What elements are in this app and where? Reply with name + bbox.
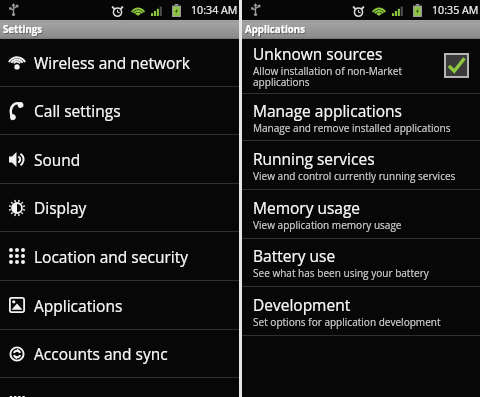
button[interactable]: Battery use [242,239,480,286]
button[interactable]: Unknown sources [242,39,480,93]
button[interactable]: Wireless and network [0,39,239,86]
staticText: Accounts and sync [34,343,168,364]
button[interactable]: Manage applications [242,94,480,140]
staticText: Location and security [34,246,188,267]
staticText: Settings [4,24,44,37]
staticText: Applications [246,24,307,37]
staticText: Settings [3,23,43,36]
button[interactable]: Call settings [0,87,239,134]
staticText: Display [34,197,87,218]
button[interactable]: Display [0,184,239,231]
button[interactable]: Privacy [0,378,239,397]
staticText: Wireless and network [34,52,190,73]
button[interactable]: Memory usage [242,190,480,238]
button[interactable]: Accounts and sync [0,330,239,377]
staticText: Running services [253,148,375,169]
button[interactable]: Development [242,287,480,335]
staticText: Call settings [34,100,121,121]
staticText: Battery use [253,245,336,266]
button[interactable]: Running services [242,141,480,189]
button[interactable]: Location and security [0,232,239,280]
staticText: Manage applications [253,100,402,121]
staticText: Set options for application development [253,315,441,329]
staticText: Allow installation of non-Market applica… [253,64,422,89]
staticText: Memory usage [253,197,361,218]
staticText: Unknown sources [253,43,383,64]
staticText: Manage and remove installed applications [253,121,451,135]
button[interactable]: Applications [0,281,239,329]
staticText: View application memory usage [253,218,402,232]
staticText: 10:35 AM [432,3,479,18]
staticText: 10:34 AM [191,3,238,18]
staticText: Development [253,294,351,315]
staticText: See what has been using your battery [253,266,429,280]
staticText: View and control currently running servi… [253,169,456,183]
staticText: Applications [34,295,123,316]
button[interactable]: Sound [0,135,239,183]
staticText: Sound [34,149,81,170]
button[interactable]: Unknown sources checkbox [446,55,467,76]
staticText: Applications [245,23,306,36]
